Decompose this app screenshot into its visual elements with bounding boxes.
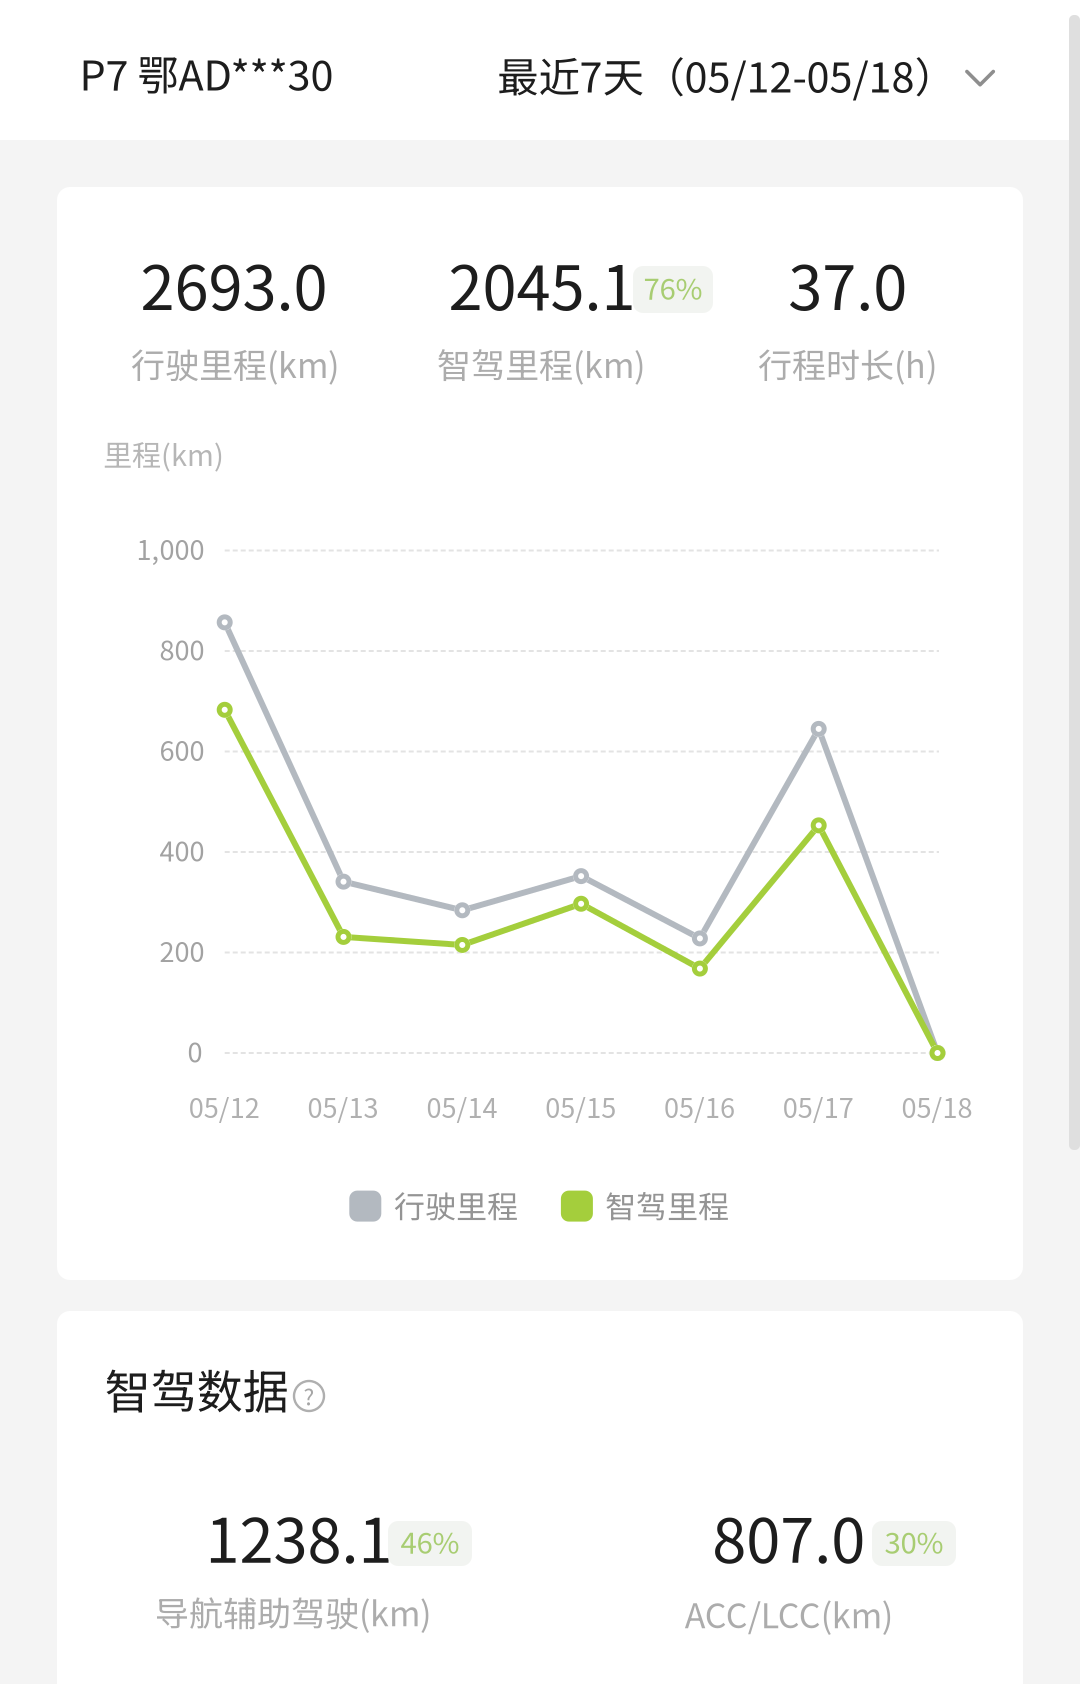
staticText: 30% — [884, 1520, 943, 1562]
staticText: 05/13 — [308, 1086, 379, 1126]
staticText: 05/14 — [426, 1086, 497, 1126]
staticText: 2045.1 — [448, 239, 635, 328]
staticText: 46% — [400, 1520, 459, 1562]
staticText: ? — [303, 1379, 314, 1412]
staticText: 400 — [160, 830, 205, 869]
staticText: 里程(km) — [103, 432, 224, 474]
staticText: 05/12 — [189, 1086, 260, 1126]
staticText: 200 — [160, 931, 205, 970]
staticText: 76% — [643, 266, 702, 308]
staticText: 智驾里程 — [605, 1182, 729, 1227]
staticText: 导航辅助驾驶(km) — [155, 1587, 431, 1636]
staticText: 1238.1 — [205, 1492, 392, 1580]
staticText: 05/17 — [783, 1086, 854, 1126]
staticText: P7 鄂AD***30 — [80, 43, 334, 102]
staticText: 37.0 — [788, 239, 907, 328]
staticText: 行驶里程(km) — [131, 339, 339, 388]
staticText: 05/16 — [664, 1086, 735, 1126]
staticText: 2693.0 — [140, 239, 327, 328]
staticText: 智驾数据 — [105, 1355, 289, 1422]
staticText: 807.0 — [712, 1492, 865, 1580]
staticText: 0 — [188, 1031, 203, 1070]
button[interactable]: 关于智驾数据 — [294, 1381, 324, 1411]
staticText: 600 — [160, 730, 205, 769]
staticText: 800 — [160, 629, 205, 668]
staticText: 智驾里程(km) — [437, 339, 645, 388]
button[interactable]: 最近7天 date range — [498, 45, 989, 104]
staticText: 行程时长(h) — [758, 339, 937, 388]
staticText: 05/15 — [545, 1086, 616, 1126]
staticText: 行驶里程 — [394, 1182, 518, 1227]
staticText: ACC/LCC(km) — [685, 1589, 893, 1638]
staticText: 1,000 — [137, 529, 205, 568]
staticText: 05/18 — [902, 1086, 973, 1126]
staticText: 最近7天（05/12-05/18） — [498, 45, 956, 104]
